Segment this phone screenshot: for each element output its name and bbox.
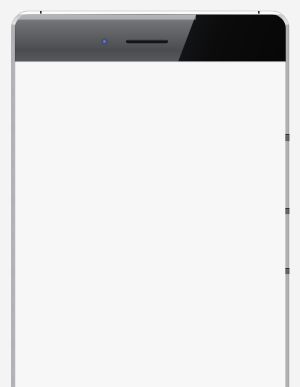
- button[interactable]: Smartphone device mockup: [0, 0, 300, 387]
